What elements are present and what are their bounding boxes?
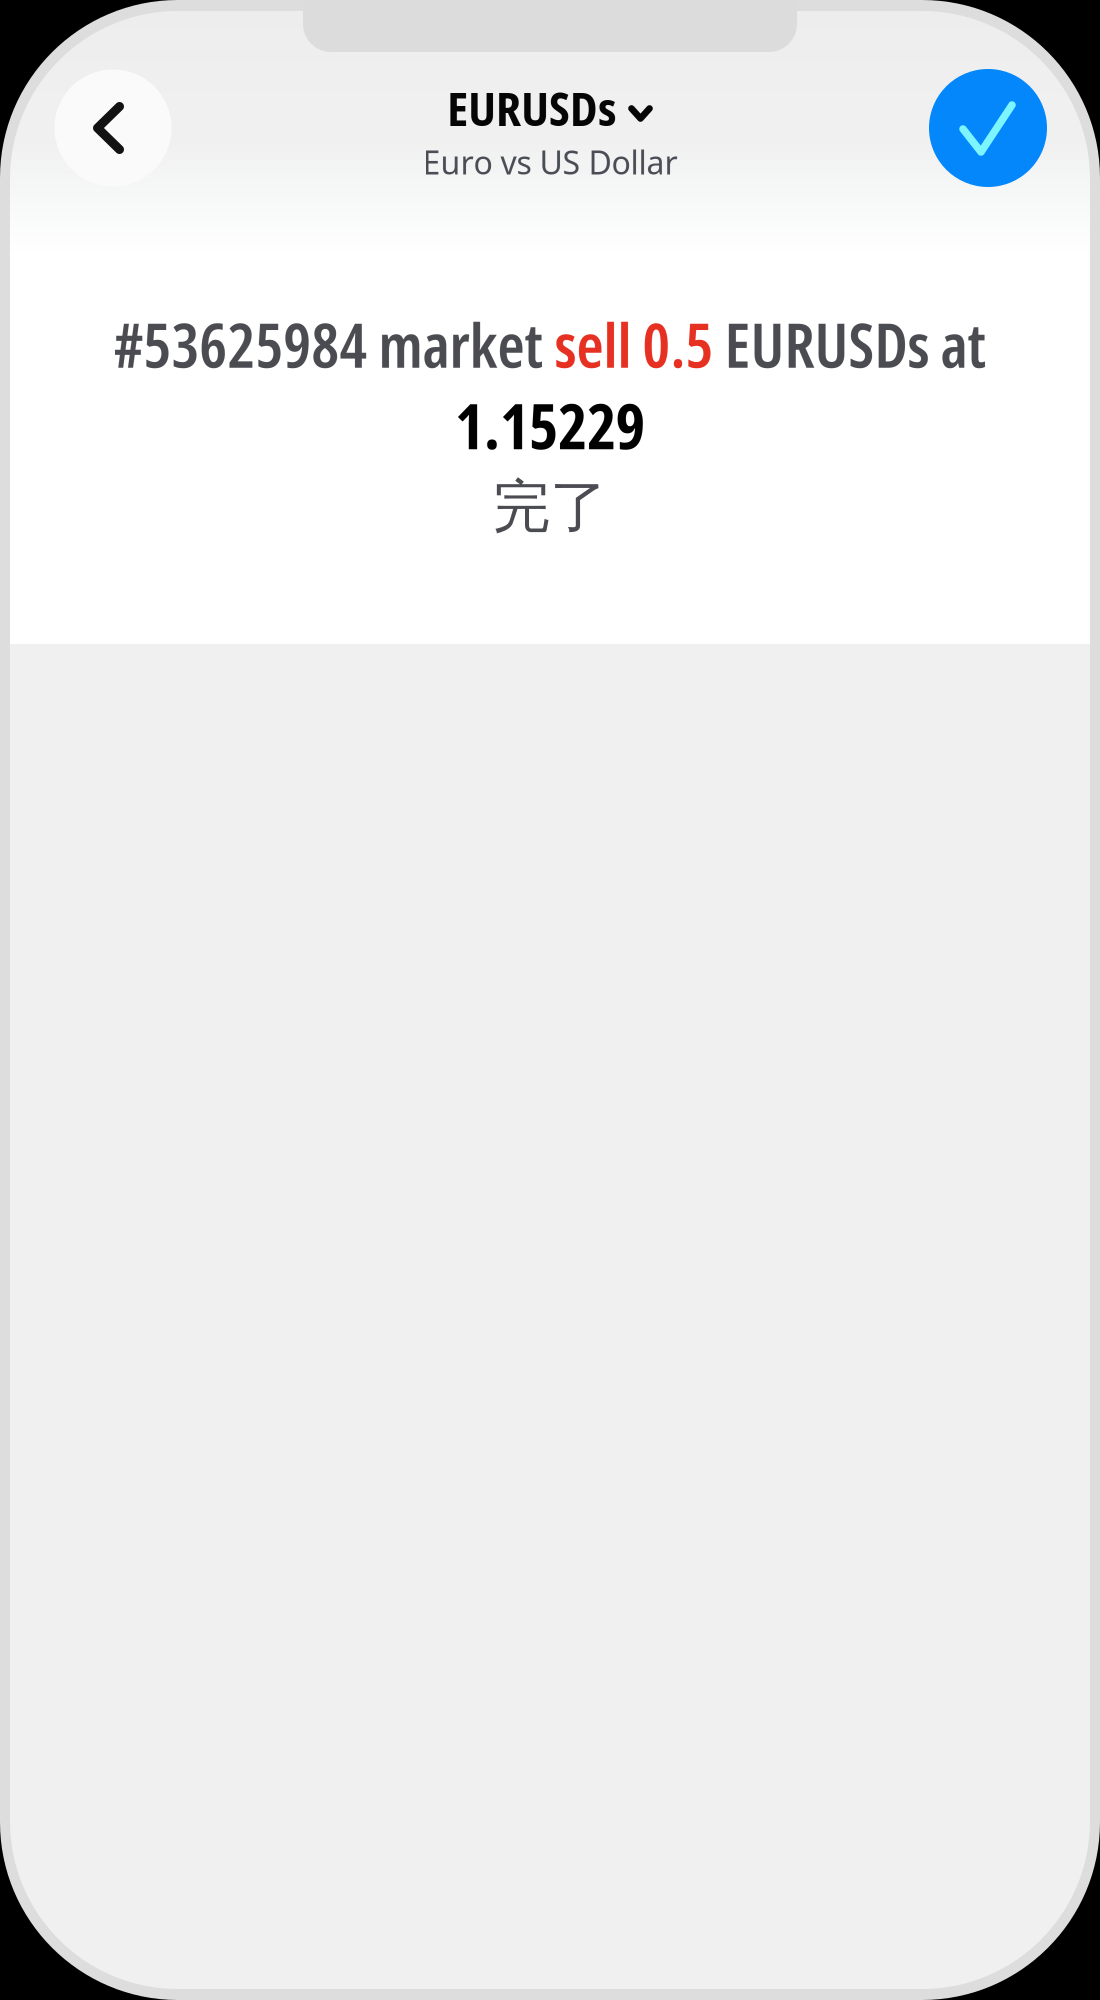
staticText: Euro vs US Dollar (422, 140, 677, 184)
button[interactable]: EURUSDs (10, 86, 1090, 179)
button[interactable]: Confirm (929, 69, 1047, 187)
staticText: sell 0.5 (554, 302, 713, 386)
staticText: 完了 (493, 471, 607, 543)
staticText: 1.15229 (455, 382, 645, 468)
button[interactable]: Back (54, 69, 171, 186)
staticText: EURUSDs (447, 76, 617, 140)
staticText: EURUSDs at (713, 302, 986, 386)
staticText: #53625984 market (113, 302, 554, 386)
